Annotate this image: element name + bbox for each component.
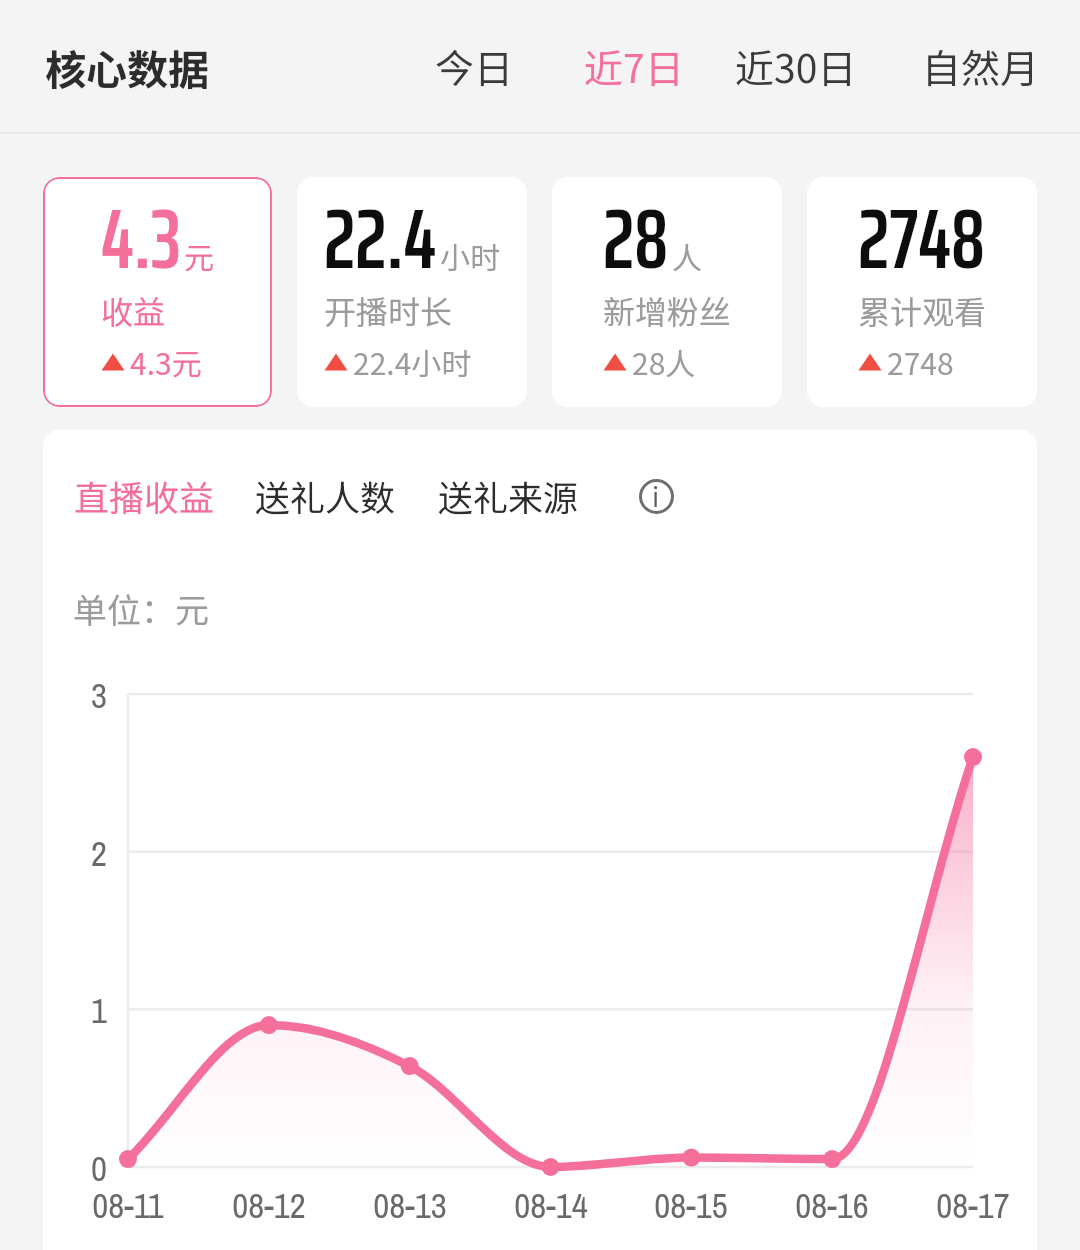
staticText: i [652,477,660,515]
staticText: 核心数据 [45,37,209,96]
staticText: 元 [184,234,214,277]
staticText: 2748 [858,177,985,305]
button[interactable]: 2748 [807,177,1037,407]
button[interactable]: 4.3 [43,177,272,407]
staticText: 2 [47,830,107,877]
button[interactable]: 送礼人数 [251,460,400,531]
button[interactable]: 22.4 [297,177,527,407]
button[interactable]: 直播收益 [70,460,219,531]
staticText: 送礼来源 [438,470,579,521]
staticText: 08-12 [189,1182,349,1229]
staticText: 自然月 [922,38,1040,94]
staticText: 小时 [440,234,500,277]
staticText: 单位：元 [73,584,209,633]
staticText: 08-15 [611,1182,771,1229]
staticText: 08-16 [752,1182,912,1229]
staticText: 送礼人数 [255,470,396,521]
button[interactable]: Info [634,474,678,518]
staticText: 3 [47,672,107,719]
staticText: 22.4 [324,177,437,305]
staticText: 4.3元 [130,340,202,383]
staticText: 开播时长 [324,287,453,333]
staticText: 0 [47,1145,107,1192]
button[interactable]: 送礼来源 [434,460,583,531]
staticText: 近7日 [584,38,684,94]
staticText: 08-13 [330,1182,490,1229]
staticText: 累计观看 [858,287,987,333]
staticText: 1 [47,987,107,1034]
button[interactable]: 28 [552,177,782,407]
staticText: 22.4小时 [353,340,472,383]
staticText: 2748 [887,340,954,383]
button[interactable]: 近30日 [733,22,859,110]
staticText: 08-11 [48,1182,208,1229]
staticText: 收益 [101,287,166,333]
button[interactable]: 近7日 [582,22,686,110]
staticText: 08-14 [471,1182,631,1229]
staticText: 近30日 [735,38,857,94]
staticText: 4.3 [101,177,181,305]
button[interactable]: 今日 [433,22,516,110]
staticText: 28人 [632,340,696,383]
staticText: 人 [672,234,702,277]
staticText: 直播收益 [74,470,215,521]
staticText: 新增粉丝 [603,287,732,333]
staticText: 28 [603,177,669,305]
staticText: 08-17 [893,1182,1037,1229]
staticText: 今日 [435,38,514,94]
button[interactable]: 自然月 [920,22,1042,110]
